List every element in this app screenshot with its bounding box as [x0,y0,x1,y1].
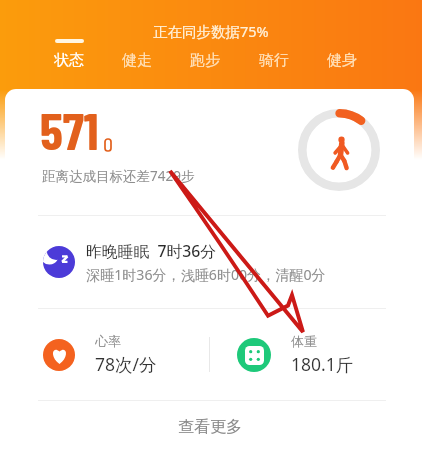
button[interactable]: 跑步 [182,36,228,72]
staticText: 昨晚睡眠 7时36分 [86,240,217,262]
staticText: 骑行 [259,51,289,70]
staticText: 查看更多 [178,417,242,437]
staticText: 深睡1时36分，浅睡6时00分，清醒0分 [86,265,326,284]
staticText: 正在同步数据75% [153,21,269,41]
staticText: 心率 [95,333,121,349]
button[interactable]: 昨晚睡眠 7时36分 [5,216,414,308]
staticText: 571 [40,98,99,160]
button[interactable]: 状态 [46,36,92,72]
button[interactable]: 体重 [210,309,414,400]
button[interactable]: 查看更多 [5,401,414,453]
staticText: 状态 [54,51,84,70]
staticText: 体重 [291,333,317,349]
staticText: 健走 [122,51,152,70]
button[interactable]: 心率 [5,309,209,400]
staticText: 78次/分 [95,352,157,376]
staticText: 180.1斤 [291,352,354,376]
button[interactable]: 健走 [114,36,160,72]
button[interactable]: 骑行 [251,36,297,72]
staticText: 健身 [327,51,357,70]
staticText: 跑步 [190,51,220,70]
staticText: 距离达成目标还差7429步 [42,167,195,185]
button[interactable]: 健身 [319,36,365,72]
